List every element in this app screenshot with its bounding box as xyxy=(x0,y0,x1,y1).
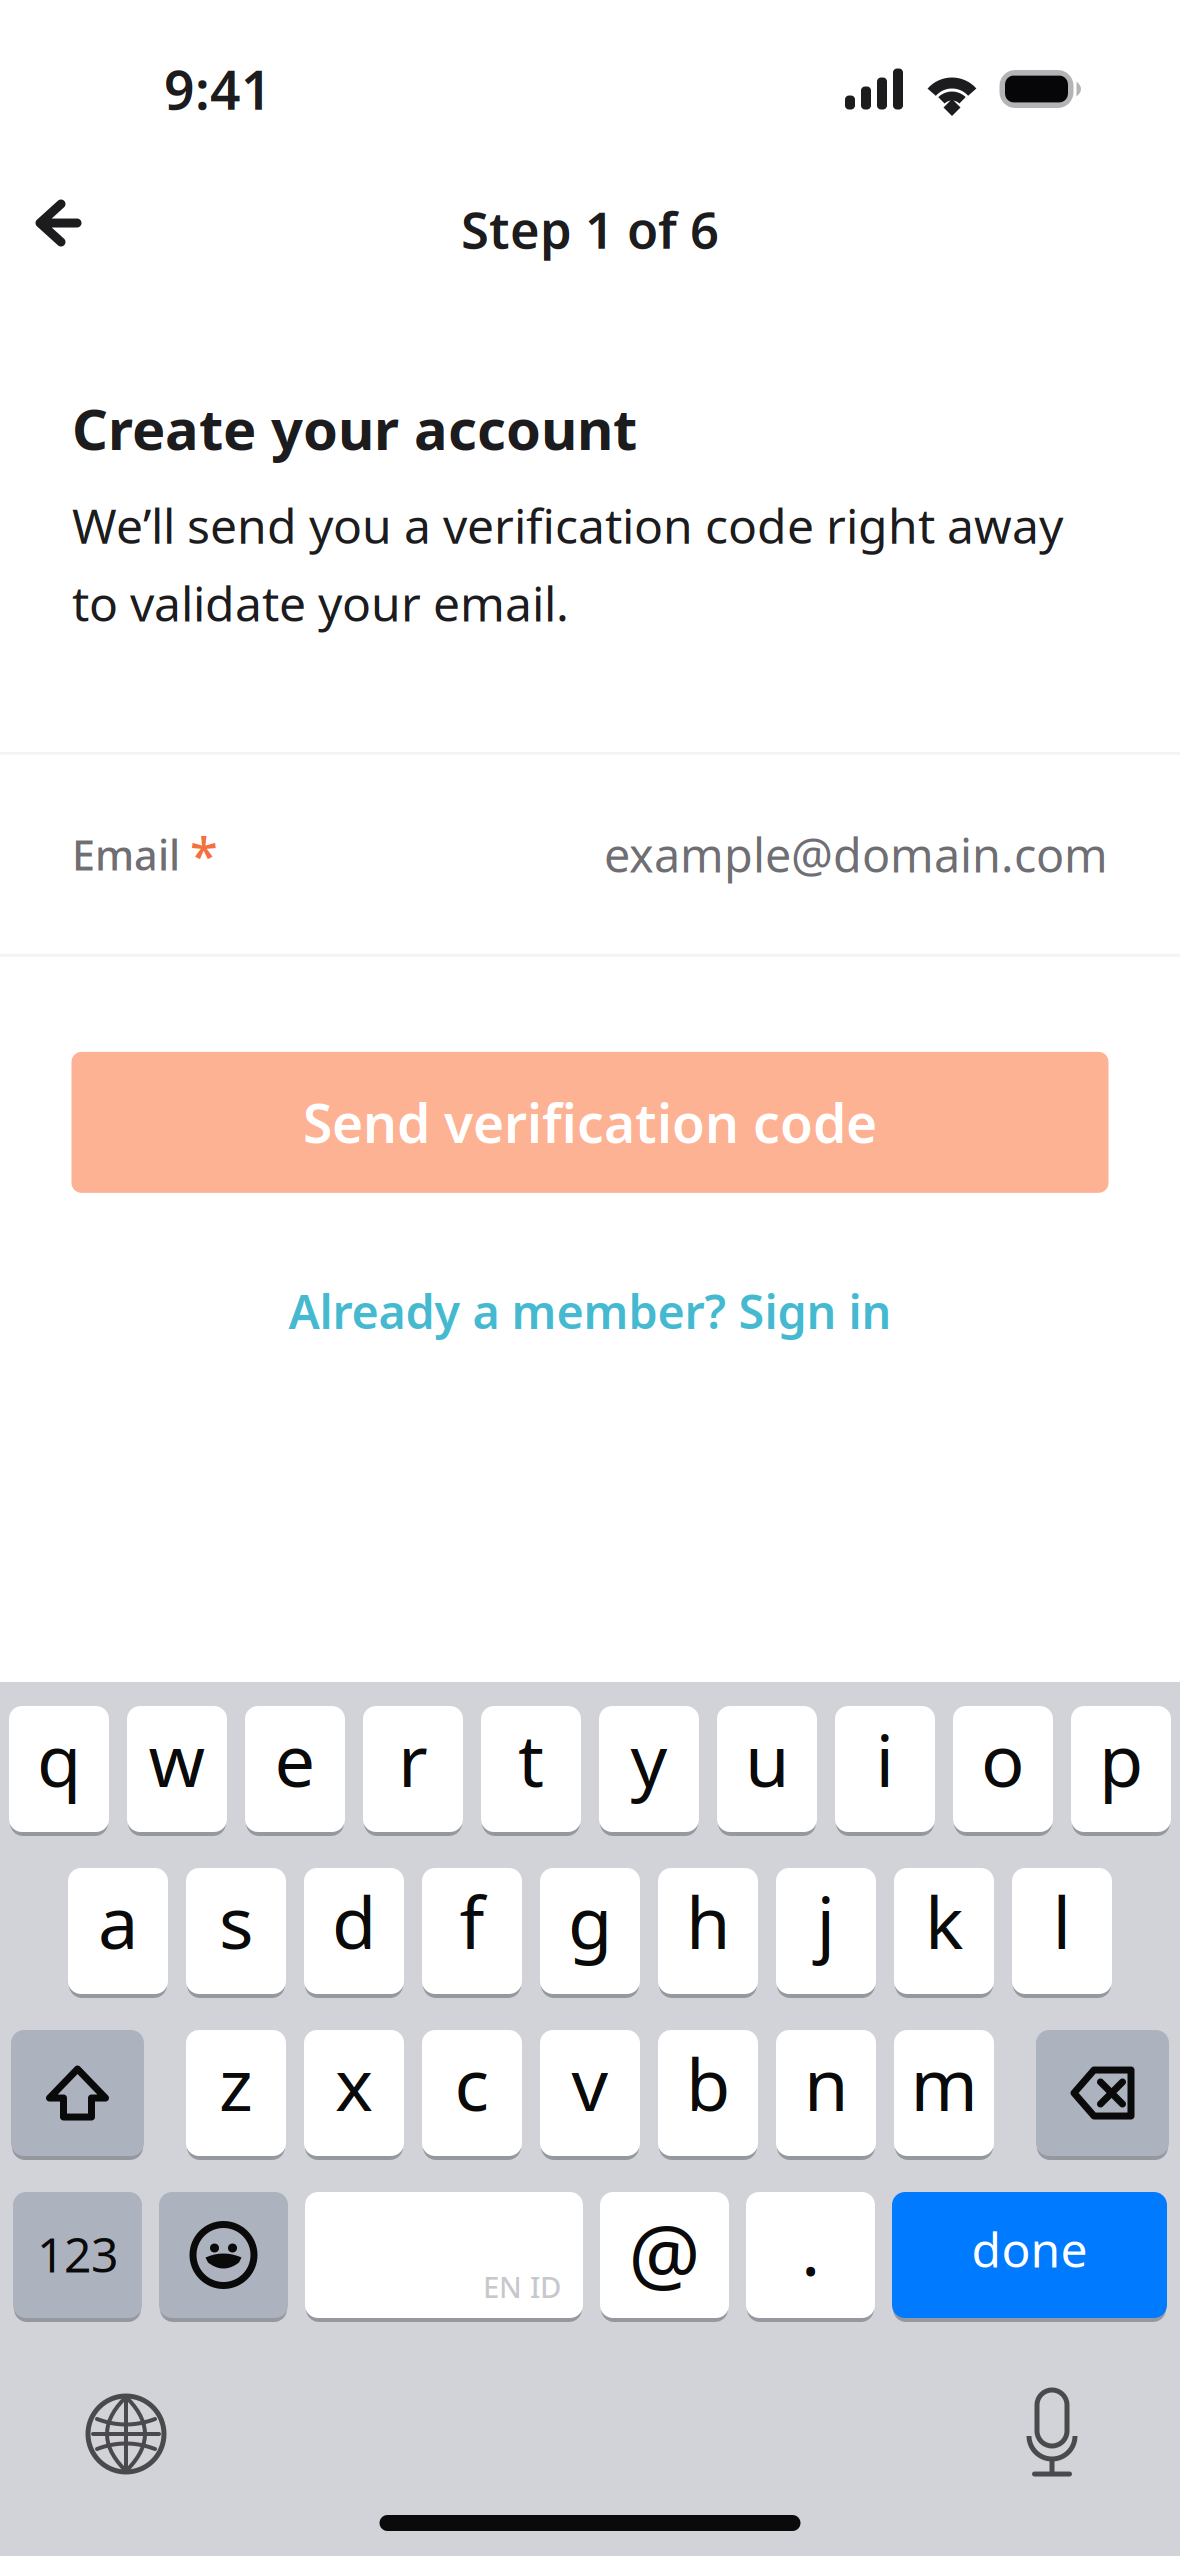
staticText: done xyxy=(971,2217,1087,2281)
staticText: r xyxy=(398,1711,428,1807)
staticText: s xyxy=(219,1873,253,1969)
button[interactable]: Shift xyxy=(11,2026,144,2160)
button[interactable]: c xyxy=(422,2026,522,2160)
button[interactable]: Send verification code xyxy=(71,1052,1108,1193)
staticText: Email xyxy=(72,827,180,882)
staticText: v xyxy=(571,2035,608,2131)
button[interactable]: e xyxy=(245,1702,345,1836)
button[interactable]: z xyxy=(186,2026,286,2160)
staticText: f xyxy=(459,1873,484,1969)
staticText: Step 1 of 6 xyxy=(461,195,719,263)
button[interactable]: b xyxy=(658,2026,758,2160)
button[interactable]: Dictate xyxy=(1025,2388,1079,2480)
staticText: e xyxy=(274,1711,315,1807)
button[interactable]: Space xyxy=(305,2188,583,2322)
button[interactable]: p xyxy=(1071,1702,1171,1836)
staticText: o xyxy=(981,1711,1025,1807)
button[interactable]: d xyxy=(304,1864,404,1998)
staticText: d xyxy=(332,1873,376,1969)
button[interactable]: f xyxy=(422,1864,522,1998)
staticText: h xyxy=(686,1873,730,1969)
staticText: EN ID xyxy=(483,2267,561,2306)
staticText: @ xyxy=(628,2200,700,2306)
staticText: . xyxy=(801,2200,820,2296)
staticText: y xyxy=(630,1711,667,1807)
staticText: We’ll send you a verification code right… xyxy=(72,493,1063,635)
staticText: x xyxy=(335,2035,373,2131)
staticText: 9:41 xyxy=(164,54,272,124)
button[interactable]: l xyxy=(1012,1864,1112,1998)
staticText: b xyxy=(686,2035,730,2131)
staticText: n xyxy=(804,2035,848,2131)
button[interactable]: Emoji xyxy=(159,2188,288,2322)
staticText: l xyxy=(1052,1873,1071,1969)
staticText: g xyxy=(568,1873,612,1969)
staticText: k xyxy=(925,1873,963,1969)
staticText: j xyxy=(816,1873,835,1969)
staticText: Create your account xyxy=(72,391,637,465)
button[interactable]: . xyxy=(746,2188,875,2322)
button[interactable]: w xyxy=(127,1702,227,1836)
staticText: q xyxy=(37,1711,81,1807)
button[interactable]: y xyxy=(599,1702,699,1836)
button[interactable]: done xyxy=(892,2188,1167,2322)
staticText: i xyxy=(875,1711,894,1807)
button[interactable]: u xyxy=(717,1702,817,1836)
staticText: u xyxy=(745,1711,789,1807)
button[interactable]: n xyxy=(776,2026,876,2160)
button[interactable]: v xyxy=(540,2026,640,2160)
button[interactable]: j xyxy=(776,1864,876,1998)
button[interactable]: Delete xyxy=(1036,2026,1169,2160)
button[interactable]: g xyxy=(540,1864,640,1998)
button[interactable]: t xyxy=(481,1702,581,1836)
staticText: 123 xyxy=(37,2222,118,2286)
button[interactable]: h xyxy=(658,1864,758,1998)
button[interactable]: a xyxy=(68,1864,168,1998)
button[interactable]: Switch keyboard xyxy=(86,2394,166,2474)
button[interactable]: Back xyxy=(10,177,114,281)
button[interactable]: o xyxy=(953,1702,1053,1836)
button[interactable]: @ xyxy=(600,2188,729,2322)
staticText: m xyxy=(910,2035,977,2131)
button[interactable]: m xyxy=(894,2026,994,2160)
staticText: Already a member? Sign in xyxy=(288,1280,891,1342)
staticText: a xyxy=(98,1873,138,1969)
button[interactable]: x xyxy=(304,2026,404,2160)
staticText: p xyxy=(1099,1711,1143,1807)
staticText: w xyxy=(148,1711,205,1807)
staticText: t xyxy=(518,1711,544,1807)
button[interactable]: r xyxy=(363,1702,463,1836)
button[interactable]: Already a member? Sign in xyxy=(71,1266,1108,1356)
button[interactable]: k xyxy=(894,1864,994,1998)
staticText: c xyxy=(454,2035,489,2131)
button[interactable]: q xyxy=(9,1702,109,1836)
staticText: example@domain.com xyxy=(604,823,1108,885)
staticText: Send verification code xyxy=(303,1087,877,1158)
staticText: * xyxy=(190,821,218,888)
staticText: z xyxy=(219,2035,253,2131)
button[interactable]: s xyxy=(186,1864,286,1998)
button[interactable]: i xyxy=(835,1702,935,1836)
button[interactable]: 123 xyxy=(13,2188,142,2322)
